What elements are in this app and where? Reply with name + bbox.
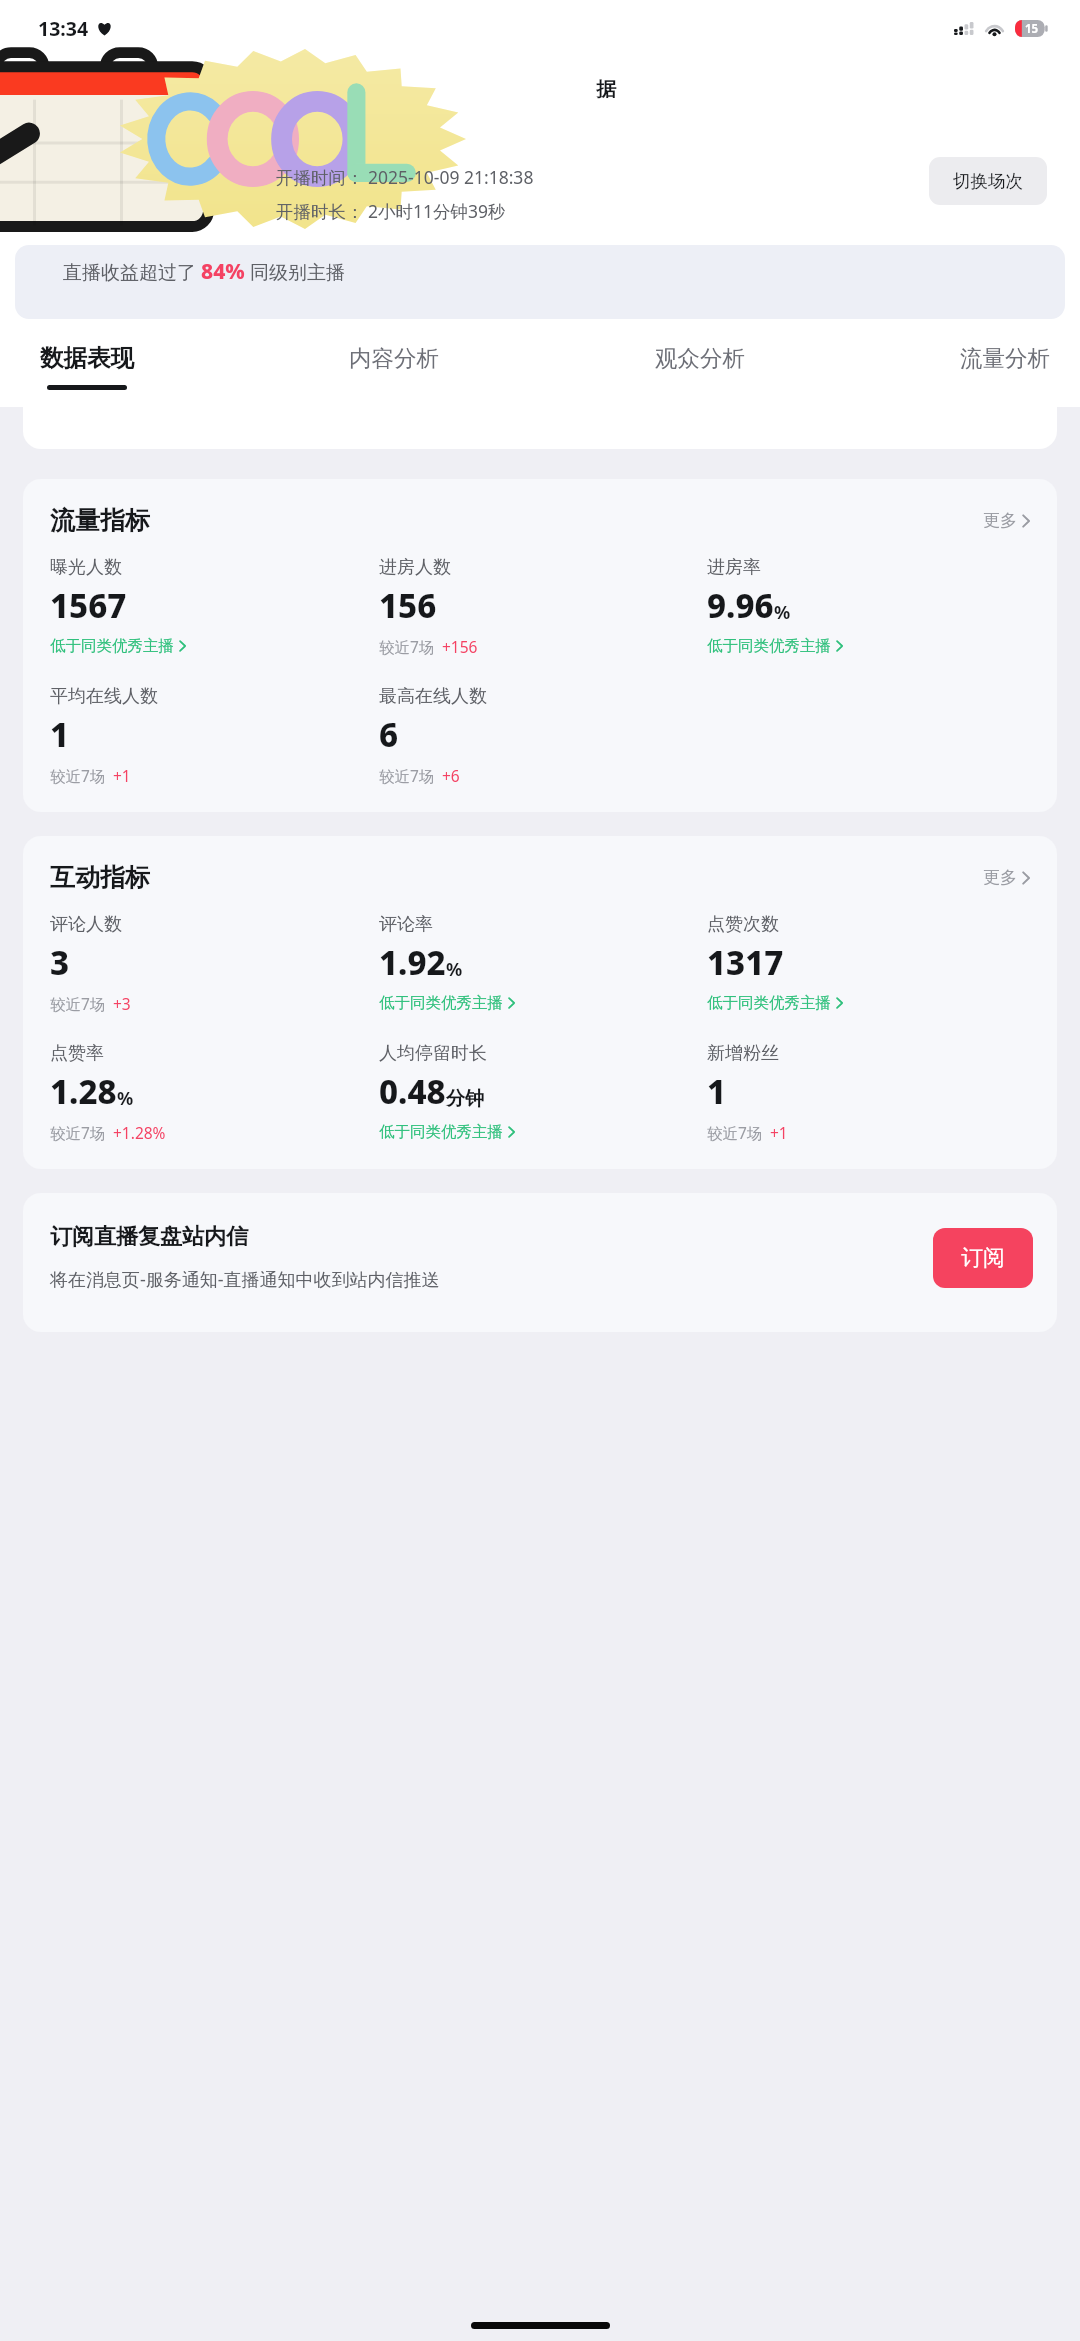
button[interactable]: 点赞率: [50, 1042, 166, 1143]
staticText: 数据表现: [40, 343, 134, 373]
staticText: 将在消息页-服务通知-直播通知中收到站内信推送: [50, 1267, 440, 1292]
staticText: 评论率: [379, 913, 433, 936]
button[interactable]: 最高在线人数: [379, 685, 487, 786]
staticText: 平均在线人数: [50, 685, 158, 708]
staticText: 1317: [707, 940, 784, 985]
staticText: +6: [442, 765, 460, 786]
staticText: 1.92: [379, 940, 446, 985]
staticText: 低于同类优秀主播: [379, 1122, 503, 1142]
staticText: 同级别主播: [245, 259, 345, 285]
staticText: 较近7场: [379, 636, 435, 657]
staticText: 1567: [50, 583, 127, 628]
staticText: 流量指标: [50, 505, 150, 536]
staticText: +156: [442, 636, 478, 657]
staticText: 点赞次数: [707, 913, 779, 936]
staticText: 直播收益超过了: [63, 259, 201, 285]
staticText: 切换场次: [953, 170, 1023, 192]
staticText: 流量分析: [960, 344, 1050, 372]
button[interactable]: 进房人数: [379, 556, 478, 657]
staticText: 低于同类优秀主播: [50, 636, 174, 656]
staticText: 6: [379, 712, 399, 757]
button[interactable]: 更多: [978, 505, 1035, 536]
staticText: 人均停留时长: [379, 1042, 487, 1065]
button[interactable]: 观众分析: [647, 344, 753, 389]
button[interactable]: 曝光人数: [50, 556, 186, 656]
staticText: 0.48: [379, 1069, 446, 1114]
button[interactable]: 数据表现: [32, 343, 142, 390]
staticText: 曝光人数: [50, 556, 122, 579]
staticText: 内容分析: [349, 344, 439, 372]
staticText: 较近7场: [50, 1122, 106, 1143]
button[interactable]: 评论人数: [50, 913, 131, 1014]
staticText: 评论人数: [50, 913, 122, 936]
staticText: 开播时长： 2小时11分钟39秒: [276, 199, 506, 223]
staticText: 9.96: [707, 583, 774, 628]
staticText: 较近7场: [707, 1122, 763, 1143]
staticText: +1.28%: [113, 1122, 166, 1143]
staticText: 更多: [983, 510, 1017, 531]
staticText: 互动指标: [50, 862, 150, 893]
staticText: %: [446, 957, 463, 982]
button[interactable]: 新增粉丝: [707, 1042, 788, 1143]
button[interactable]: 评论率: [379, 913, 515, 1013]
staticText: 低于同类优秀主播: [707, 636, 831, 656]
staticText: 3: [50, 940, 70, 985]
staticText: 进房人数: [379, 556, 451, 579]
staticText: 点赞率: [50, 1042, 104, 1065]
staticText: 156: [379, 583, 437, 628]
staticText: 15: [1025, 21, 1039, 37]
staticText: +1: [770, 1122, 788, 1143]
staticText: 进房率: [707, 556, 761, 579]
staticText: 较近7场: [50, 993, 106, 1014]
staticText: +1: [113, 765, 131, 786]
staticText: 低于同类优秀主播: [379, 993, 503, 1013]
staticText: 新增粉丝: [707, 1042, 779, 1065]
staticText: 开播时间： 2025-10-09 21:18:38: [276, 165, 534, 189]
staticText: 1: [707, 1069, 727, 1114]
staticText: 分钟: [446, 1087, 484, 1111]
button[interactable]: 平均在线人数: [50, 685, 158, 786]
staticText: 据: [596, 77, 616, 102]
button[interactable]: 点赞次数: [707, 913, 843, 1013]
staticText: 1.28: [50, 1069, 117, 1114]
staticText: 低于同类优秀主播: [707, 993, 831, 1013]
staticText: 订阅直播复盘站内信: [50, 1223, 248, 1251]
staticText: %: [774, 600, 791, 625]
staticText: 最高在线人数: [379, 685, 487, 708]
staticText: 较近7场: [50, 765, 106, 786]
staticText: 订阅: [961, 1244, 1005, 1272]
button[interactable]: 流量分析: [952, 344, 1058, 389]
staticText: 更多: [983, 867, 1017, 888]
button[interactable]: 内容分析: [341, 344, 447, 389]
button[interactable]: 更多: [978, 862, 1035, 893]
button[interactable]: 切换场次: [929, 157, 1047, 205]
staticText: 1: [50, 712, 70, 757]
staticText: %: [117, 1086, 134, 1111]
staticText: 较近7场: [379, 765, 435, 786]
button[interactable]: 人均停留时长: [379, 1042, 515, 1142]
button[interactable]: 进房率: [707, 556, 843, 656]
button[interactable]: 订阅: [933, 1228, 1033, 1288]
staticText: 观众分析: [655, 344, 745, 372]
staticText: +3: [113, 993, 131, 1014]
staticText: 84%: [201, 257, 245, 286]
staticText: 13:34: [38, 15, 89, 42]
